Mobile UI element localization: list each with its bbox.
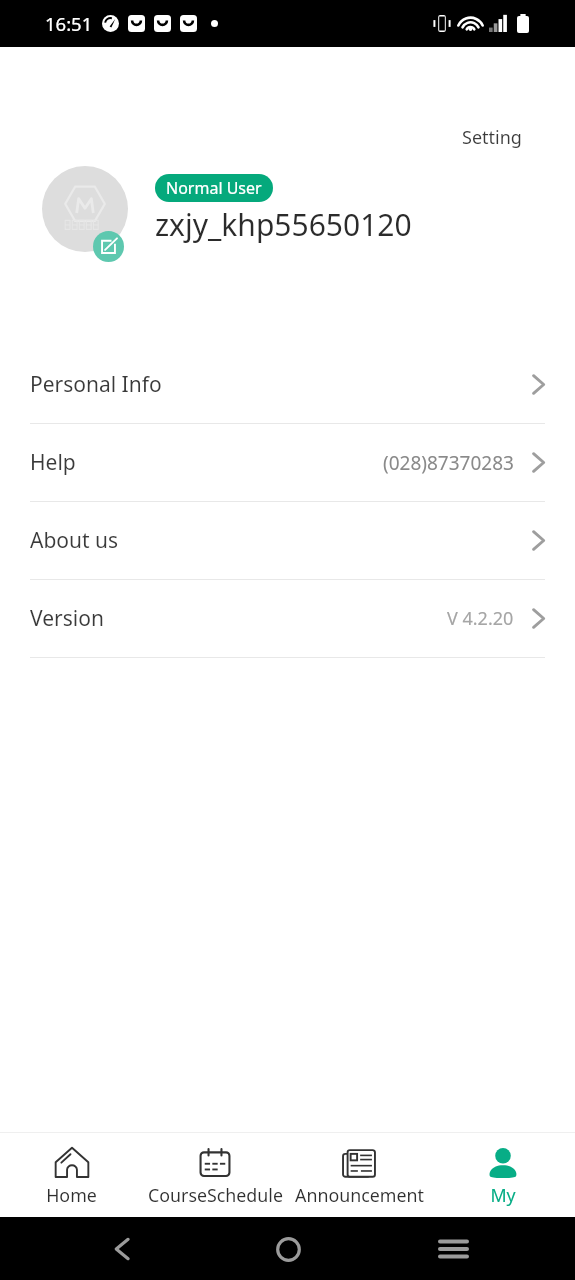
button[interactable]: Home [263,1224,313,1274]
button[interactable]: Version [0,580,575,658]
button[interactable]: Back [97,1224,147,1274]
staticText: Version [30,604,104,633]
button[interactable]: Edit avatar [93,231,124,262]
button[interactable]: Help [0,424,575,502]
staticText: Personal Info [30,370,162,399]
staticText: 16:51 [45,11,93,36]
staticText: Help [30,448,76,477]
staticText: Setting [462,125,522,150]
button[interactable]: Announcement [287,1144,431,1207]
button[interactable]: Recents [428,1224,478,1274]
button[interactable]: CourseSchedule [143,1144,287,1207]
button[interactable]: Personal Info [0,346,575,424]
staticText: About us [30,526,119,555]
staticText: V 4.2.20 [447,606,514,631]
button[interactable]: Home [0,1144,143,1207]
staticText: Normal User [166,177,262,199]
staticText: Home [46,1183,97,1207]
button[interactable]: Profile avatar [42,166,128,252]
staticText: My [490,1183,516,1207]
button[interactable]: My [431,1144,575,1207]
button[interactable]: About us [0,502,575,580]
staticText: Announcement [295,1183,424,1207]
staticText: CourseSchedule [148,1183,283,1207]
staticText: zxjy_khp55650120 [155,204,412,245]
button[interactable]: Normal User [155,174,273,202]
staticText: (028)87370283 [383,450,514,476]
button[interactable]: Setting [440,119,575,156]
